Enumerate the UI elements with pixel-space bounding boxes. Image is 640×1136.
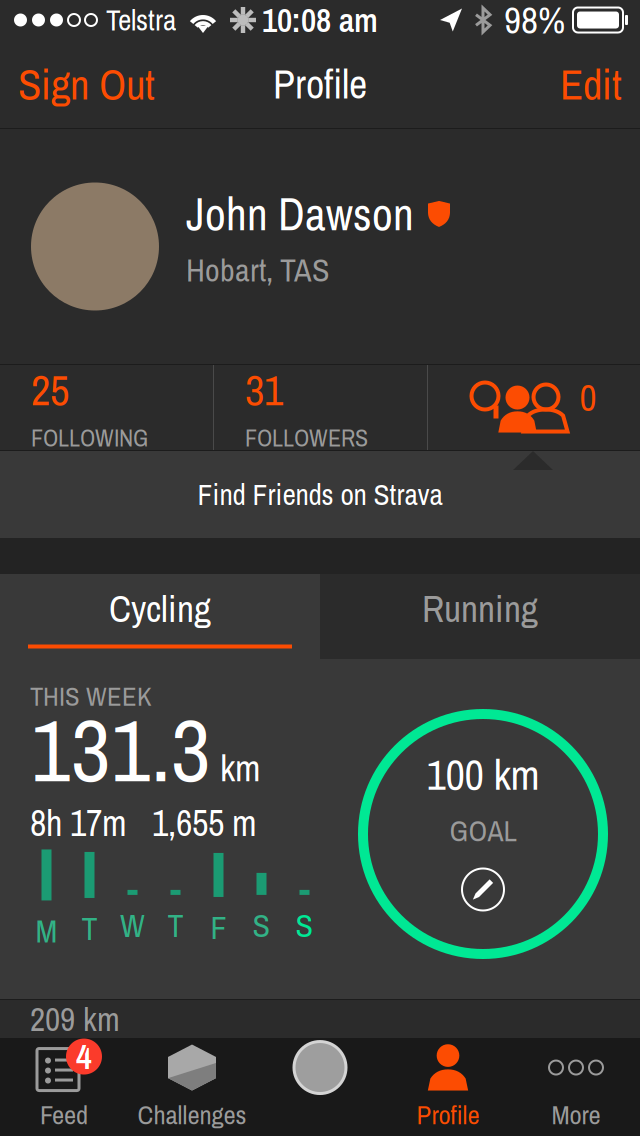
button[interactable]: Sign Out <box>0 40 169 128</box>
staticText: S <box>295 904 313 947</box>
staticText: 25 <box>31 361 69 419</box>
button[interactable]: Find Friends on Strava <box>0 451 640 538</box>
staticText: 209 km <box>30 997 120 1041</box>
staticText: S <box>252 904 270 947</box>
button[interactable]: 4 <box>0 1038 128 1136</box>
staticText: 98% <box>504 0 565 45</box>
button[interactable]: Find friends <box>428 365 640 450</box>
staticText: Hobart, TAS <box>186 248 330 292</box>
button[interactable] <box>256 1038 384 1136</box>
button[interactable]: Running <box>320 574 640 659</box>
staticText: 0 <box>579 372 596 423</box>
staticText: THIS WEEK <box>30 678 152 714</box>
staticText: km <box>220 743 260 793</box>
staticText: 10:08 am <box>262 0 378 42</box>
button[interactable]: 25 <box>0 365 213 450</box>
staticText: More <box>551 1096 600 1132</box>
button[interactable]: More <box>512 1038 640 1136</box>
button[interactable]: Edit goal <box>462 850 504 910</box>
button[interactable]: 31 <box>214 365 427 450</box>
staticText: Challenges <box>137 1096 246 1132</box>
staticText: FOLLOWERS <box>245 422 368 454</box>
staticText: 1,655 m <box>152 799 257 847</box>
staticText: FOLLOWING <box>31 422 148 454</box>
button[interactable]: Challenges <box>128 1038 256 1136</box>
staticText: Running <box>422 583 538 634</box>
staticText: Find Friends on Strava <box>197 475 442 514</box>
staticText: T <box>167 904 183 947</box>
staticText: 8h 17m <box>30 799 127 847</box>
staticText: T <box>81 907 97 950</box>
button[interactable]: Cycling <box>0 574 320 659</box>
staticText: 100 km <box>426 745 539 803</box>
staticText: F <box>210 906 226 949</box>
staticText: 131.3 <box>31 692 211 808</box>
staticText: Telstra <box>106 0 176 40</box>
staticText: GOAL <box>449 811 516 850</box>
staticText: 4 <box>76 1033 92 1080</box>
staticText: W <box>120 904 145 947</box>
staticText: Sign Out <box>18 55 155 113</box>
button[interactable]: Profile <box>384 1038 512 1136</box>
staticText: Feed <box>40 1096 88 1132</box>
button[interactable]: Edit <box>546 40 640 128</box>
staticText: Edit <box>560 55 622 113</box>
staticText: 31 <box>245 361 283 419</box>
staticText: Profile <box>416 1096 479 1132</box>
staticText: Profile <box>273 57 367 111</box>
staticText: M <box>35 909 57 952</box>
staticText: John Dawson <box>186 183 414 244</box>
staticText: Cycling <box>109 583 211 634</box>
